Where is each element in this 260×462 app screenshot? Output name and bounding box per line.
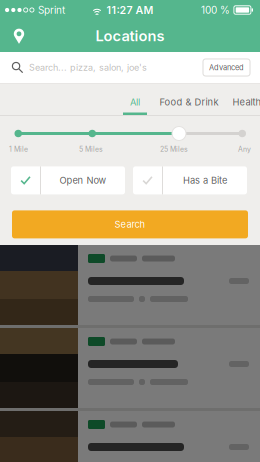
staticText: 5 Miles xyxy=(79,145,103,153)
button[interactable]: Food & Drink xyxy=(161,84,217,115)
staticText: Search... pizza, salon, joe's xyxy=(29,62,147,73)
staticText: Has a Bite xyxy=(183,175,227,186)
staticText: Any xyxy=(238,145,251,153)
staticText: Health xyxy=(232,96,260,108)
staticText: 11:27 AM xyxy=(106,3,153,16)
button[interactable]: Current location xyxy=(0,21,38,51)
button[interactable]: Open Now xyxy=(11,166,125,194)
staticText: Food & Drink xyxy=(159,96,218,108)
staticText: 1 Mile xyxy=(9,145,28,153)
button[interactable]: Health xyxy=(231,84,260,115)
button[interactable]: Search xyxy=(12,210,248,238)
staticText: Open Now xyxy=(59,175,106,186)
button[interactable]: All xyxy=(123,84,147,115)
button[interactable]: Advanced xyxy=(203,59,250,76)
button[interactable]: Has a Bite xyxy=(133,166,247,194)
staticText: Search xyxy=(114,219,145,230)
staticText: 25 Miles xyxy=(160,145,188,153)
staticText: 100 % xyxy=(201,4,230,16)
staticText: All xyxy=(130,96,140,108)
staticText: Locations xyxy=(95,27,164,45)
staticText: Sprint xyxy=(38,4,65,16)
staticText: Advanced xyxy=(209,63,244,72)
